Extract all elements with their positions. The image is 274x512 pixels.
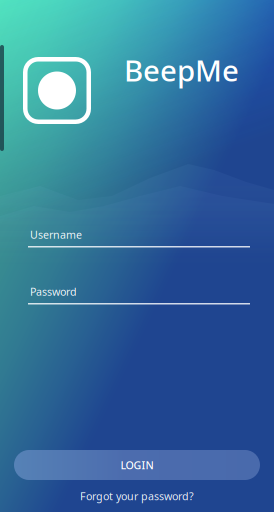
button[interactable]: Forgot your password?	[0, 487, 274, 505]
staticText: Username	[30, 227, 82, 242]
staticText: BeepMe	[124, 50, 239, 89]
staticText: LOGIN	[120, 458, 153, 472]
staticText: Forgot your password?	[80, 489, 194, 503]
button[interactable]: LOGIN	[14, 450, 260, 480]
staticText: Password	[30, 284, 77, 299]
